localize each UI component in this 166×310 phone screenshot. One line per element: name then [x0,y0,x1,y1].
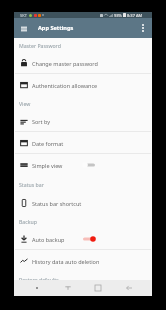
button[interactable]: Date format [14,132,152,154]
button[interactable]: Status bar shortcut [14,192,152,214]
staticText: Restore defaults [19,276,59,283]
button[interactable]: Hide keyboard [61,281,75,295]
staticText: Master Password [19,42,61,49]
button[interactable]: Recent apps [91,281,105,295]
button[interactable]: Authentication allowance [14,74,152,96]
button[interactable]: Auto backup [14,228,152,250]
button[interactable]: Menu [30,281,44,295]
button[interactable]: History data auto deletion [14,250,152,272]
button[interactable]: Sort by [14,111,152,132]
staticText: SKT [20,13,27,18]
staticText: Status bar shortcut [32,200,82,207]
staticText: Authentication allowance [32,82,98,89]
button[interactable]: Simple view [14,154,152,176]
button[interactable]: Change master password [14,52,152,74]
staticText: Status bar [19,181,44,188]
staticText: Auto backup [32,236,65,243]
button[interactable]: Back [122,281,136,295]
staticText: App Settings [38,24,74,32]
staticText: Sort by [32,118,51,125]
staticText: 8:37 AM [127,13,143,18]
staticText: Simple view [32,162,63,169]
button[interactable]: Open navigation drawer [14,19,33,38]
staticText: Date format [32,140,64,147]
staticText: Backup [19,218,37,225]
staticText: History data auto deletion [32,258,100,265]
staticText: Change master password [32,60,98,67]
button[interactable]: More options [134,19,152,37]
staticText: View [19,100,31,107]
staticText: 93% [114,13,122,18]
